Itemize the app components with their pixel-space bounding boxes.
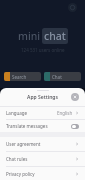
staticText: Chat rules (6, 156, 28, 162)
staticText: Privacy policy (6, 171, 35, 177)
button[interactable]: Close (71, 93, 79, 101)
staticText: Language (6, 110, 28, 116)
staticText: chat (44, 29, 66, 43)
staticText: 124 531 users online (21, 47, 65, 53)
button[interactable]: Translate messages toggle (71, 124, 79, 129)
staticText: User agreement (6, 141, 41, 147)
button[interactable]: Translate messages (0, 120, 85, 132)
staticText: Chat (52, 74, 62, 80)
button[interactable]: Chat (44, 72, 81, 81)
staticText: Search (12, 74, 27, 80)
staticText: English (57, 110, 73, 116)
button[interactable]: Language (0, 107, 85, 119)
button[interactable]: User agreement (0, 137, 85, 151)
button[interactable]: Language (68, 3, 77, 12)
button[interactable]: Search (4, 72, 41, 81)
button[interactable]: Chat rules (0, 152, 85, 166)
button[interactable]: Privacy policy (0, 167, 85, 180)
staticText: App Settings (0, 94, 85, 101)
staticText: mini (18, 29, 41, 43)
staticText: Translate messages (6, 123, 48, 129)
